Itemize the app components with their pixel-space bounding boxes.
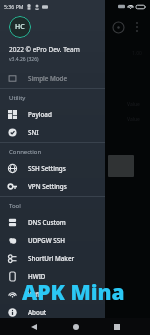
button[interactable]: HC [9, 16, 31, 38]
staticText: DNS Custom [28, 218, 66, 227]
button[interactable]: SSH Settings [0, 159, 105, 177]
staticText: Connection [9, 148, 42, 156]
button[interactable]: Recents [108, 318, 125, 335]
staticText: SSH Settings [28, 164, 66, 173]
button[interactable]: SNI [0, 123, 105, 141]
button[interactable]: DNS Custom [0, 213, 105, 231]
button[interactable]: Wifi [0, 285, 105, 303]
staticText: Value [127, 101, 140, 108]
button[interactable]: Payload [0, 105, 105, 123]
button[interactable] [0, 0, 150, 335]
button[interactable]: ShortUrl Maker [0, 249, 105, 267]
button[interactable]: VPN Settings [0, 177, 105, 195]
staticText: UDPGW SSH [28, 236, 65, 245]
staticText: 5:36 PM [4, 3, 24, 10]
button[interactable]: Back [25, 318, 42, 335]
staticText: Tool [9, 202, 21, 210]
button[interactable]: UDPGW SSH [0, 231, 105, 249]
button[interactable]: Home [67, 318, 84, 335]
staticText: SNI [28, 128, 39, 137]
staticText: APK Mina [22, 278, 125, 307]
staticText: About [28, 308, 47, 317]
button[interactable]: HWID [0, 267, 105, 285]
staticText: Value [127, 116, 140, 123]
staticText: ShortUrl Maker [28, 254, 75, 263]
staticText: 1.00 [132, 50, 142, 57]
button[interactable]: About [0, 303, 105, 321]
button[interactable]: More options [128, 18, 146, 36]
staticText: 2022 © ePro Dev. Team [9, 45, 80, 54]
staticText: Payload [28, 110, 52, 119]
staticText: Utility [9, 94, 26, 102]
staticText: Wifi [28, 290, 40, 299]
staticText: Simple Mode [28, 74, 68, 83]
staticText: HWID [28, 272, 46, 281]
button[interactable]: Refresh [108, 17, 128, 37]
staticText: v3.4.26 (326) [9, 56, 39, 63]
button[interactable]: Simple Mode [0, 69, 105, 87]
staticText: HC [15, 22, 25, 32]
staticText: VPN Settings [28, 182, 67, 191]
